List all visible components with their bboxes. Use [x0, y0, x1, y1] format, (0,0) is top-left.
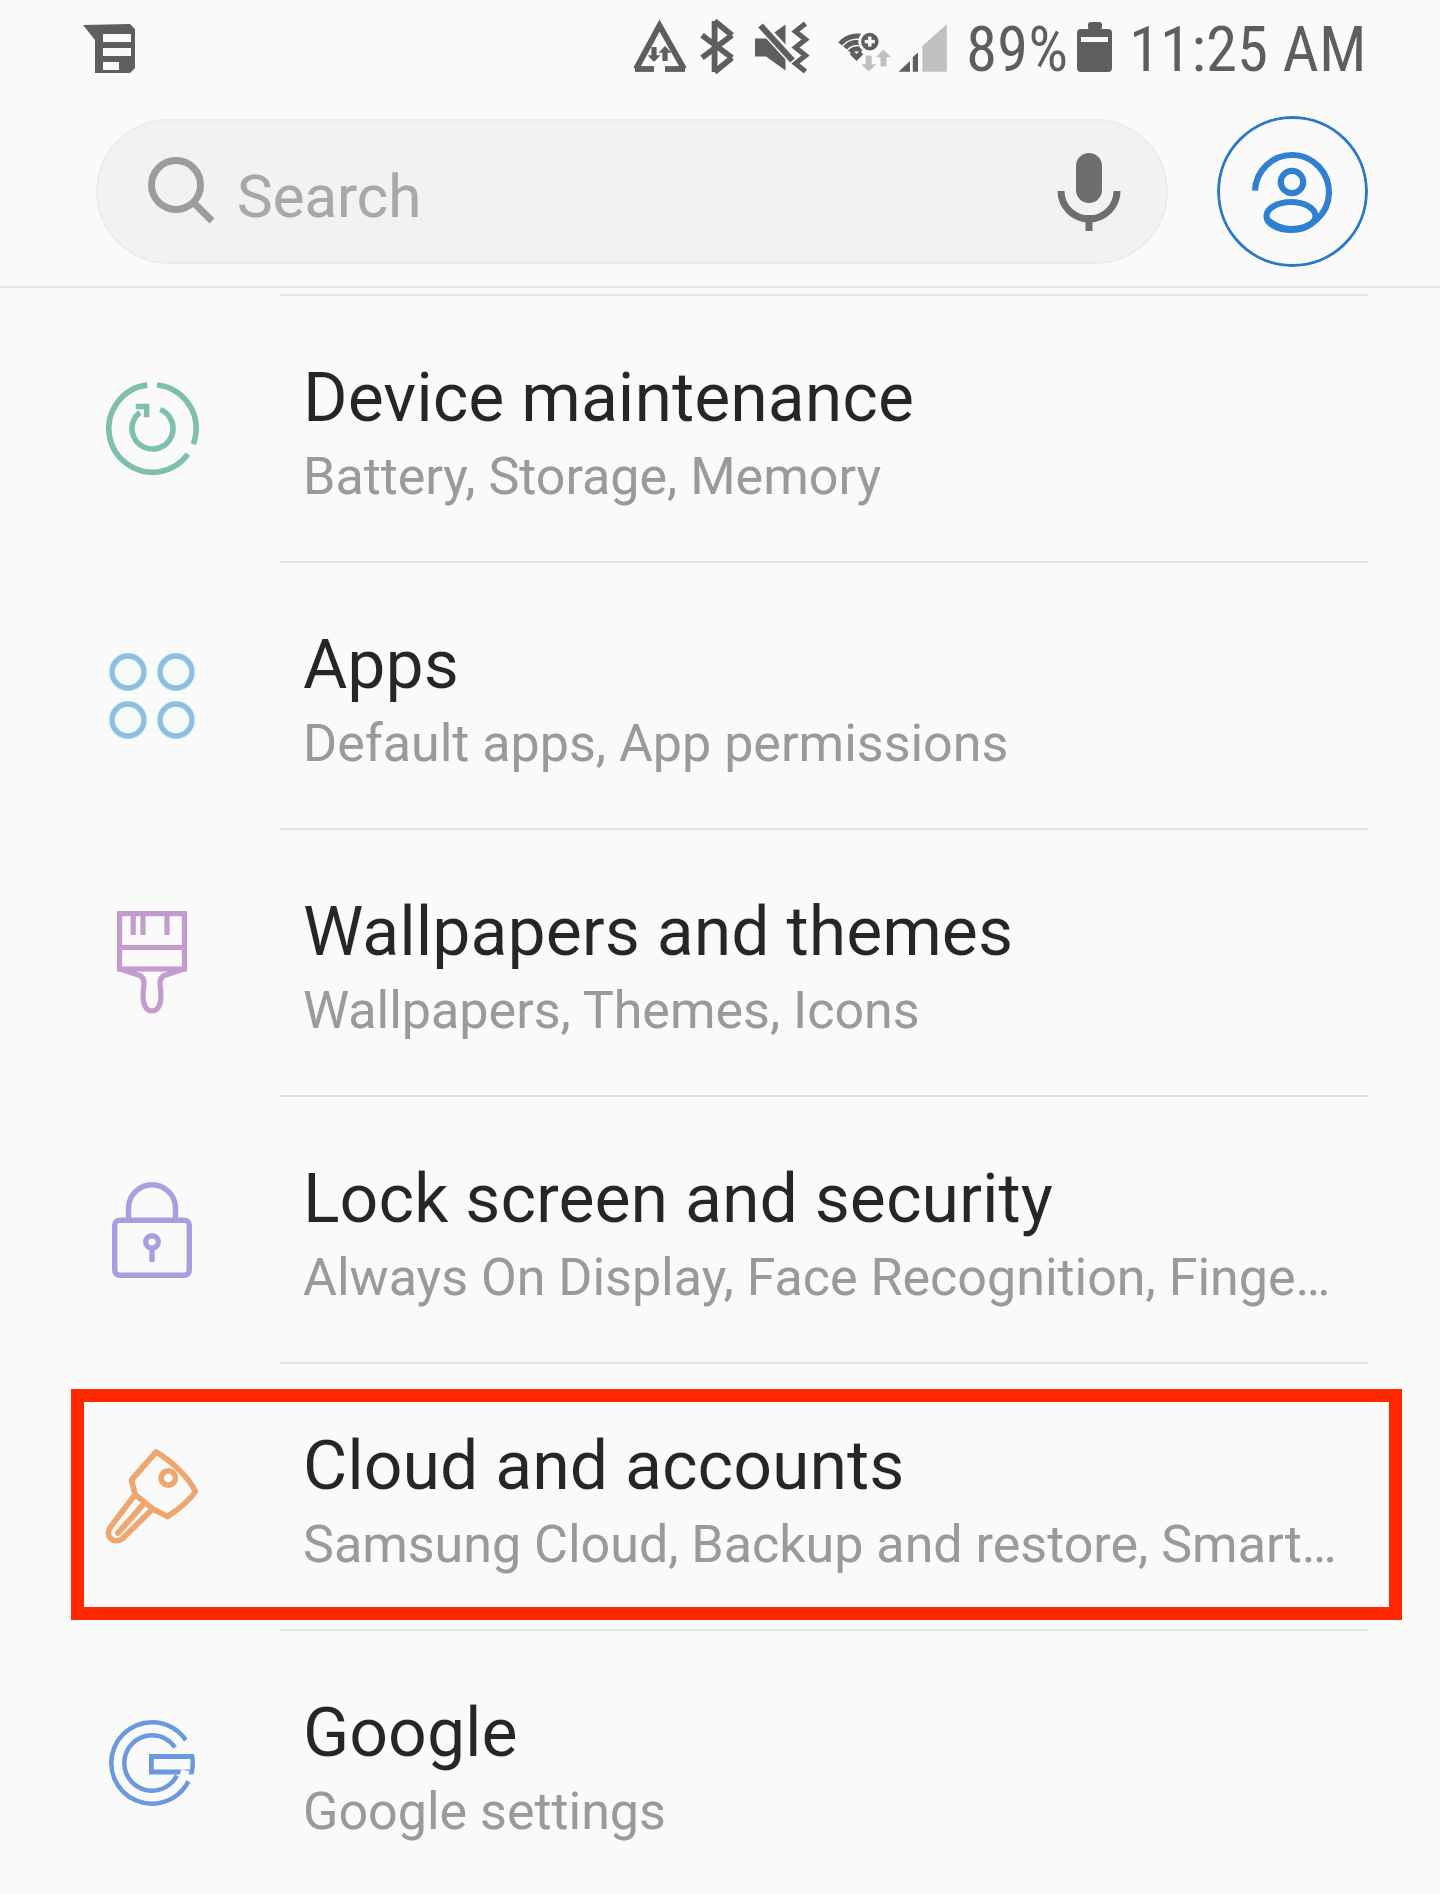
button[interactable]: Apps: [0, 563, 1440, 828]
staticText: Wallpapers, Themes, Icons: [303, 980, 920, 1041]
button[interactable]: Account: [1217, 116, 1368, 267]
staticText: Google settings: [303, 1781, 666, 1842]
staticText: Cloud and accounts: [303, 1426, 905, 1506]
staticText: Device maintenance: [303, 358, 915, 438]
staticText: Always On Display, Face Recognition, Fin…: [303, 1247, 1331, 1308]
button[interactable]: Search: [96, 119, 1168, 264]
staticText: 11:25 AM: [1129, 13, 1367, 87]
staticText: Wallpapers and themes: [303, 892, 1014, 972]
staticText: Apps: [303, 625, 459, 705]
button[interactable]: Google: [0, 1631, 1440, 1894]
button[interactable]: Cloud and accounts: [0, 1364, 1440, 1629]
button[interactable]: Lock screen and security: [0, 1097, 1440, 1362]
staticText: Search: [237, 161, 422, 231]
staticText: Lock screen and security: [303, 1159, 1053, 1239]
staticText: Battery, Storage, Memory: [303, 446, 882, 507]
staticText: 89%: [966, 13, 1069, 87]
button[interactable]: Voice search: [1046, 142, 1134, 252]
staticText: Google: [303, 1693, 518, 1773]
button[interactable]: Device maintenance: [0, 296, 1440, 561]
staticText: Samsung Cloud, Backup and restore, Smart…: [303, 1514, 1337, 1575]
button[interactable]: Wallpapers and themes: [0, 830, 1440, 1095]
staticText: Default apps, App permissions: [303, 713, 1009, 774]
